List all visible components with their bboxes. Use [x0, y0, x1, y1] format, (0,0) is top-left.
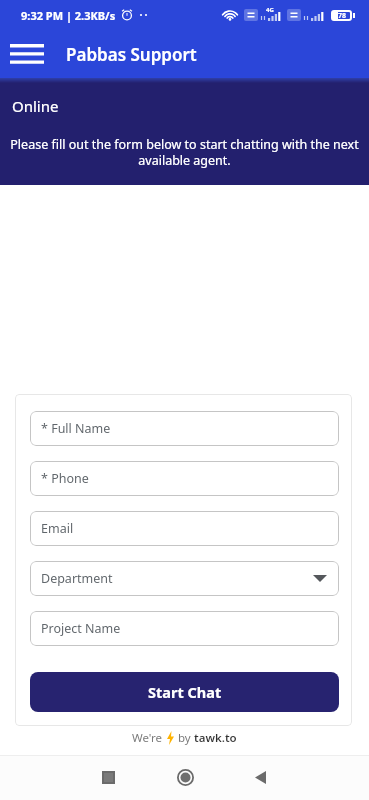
button[interactable] [4, 34, 50, 74]
button[interactable]: Email [30, 511, 339, 546]
staticText: Email [41, 520, 74, 537]
staticText: * Full Name [41, 420, 111, 437]
staticText: Online [12, 96, 59, 116]
button[interactable]: We're [0, 730, 369, 746]
staticText: Department [41, 570, 113, 587]
staticText: Start Chat [148, 682, 222, 702]
staticText: 4G [266, 6, 274, 14]
staticText: 9:32 PM | 2.3KB/s [21, 8, 116, 23]
button[interactable]: Project Name [30, 611, 339, 646]
button[interactable] [236, 755, 284, 800]
staticText: * Phone [41, 470, 89, 487]
staticText: We're [132, 730, 166, 746]
staticText: tawk.to [194, 730, 237, 746]
staticText: by [175, 730, 194, 746]
staticText: 78 [338, 11, 347, 21]
staticText: Project Name [41, 620, 121, 637]
button[interactable]: * Full Name [30, 411, 339, 446]
button[interactable] [84, 755, 132, 800]
staticText: Please fill out the form below to start … [0, 136, 369, 169]
button[interactable]: * Phone [30, 461, 339, 496]
button[interactable]: Department [30, 561, 339, 596]
button[interactable] [161, 755, 209, 800]
button[interactable]: Start Chat [30, 672, 339, 712]
staticText: Pabbas Support [66, 43, 197, 66]
